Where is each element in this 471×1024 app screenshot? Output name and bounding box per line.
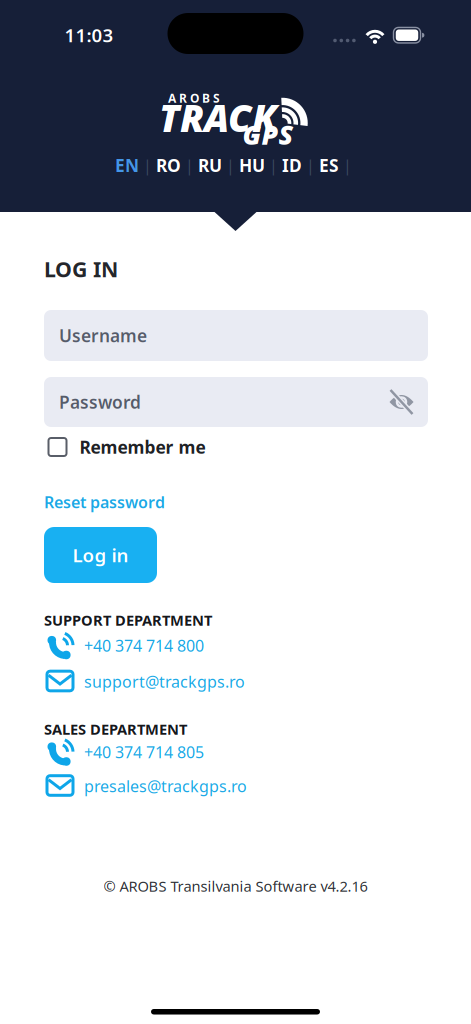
staticText: | — [343, 155, 352, 176]
staticText: ID — [282, 154, 302, 177]
staticText: | — [269, 155, 278, 176]
button[interactable]: HU — [239, 154, 265, 177]
button[interactable]: RO — [156, 154, 181, 177]
button[interactable]: Log in — [44, 527, 157, 583]
button[interactable]: +40 374 714 800 — [44, 627, 471, 663]
staticText: SUPPORT DEPARTMENT — [44, 610, 212, 630]
button[interactable]: support@trackgps.ro — [44, 663, 471, 699]
staticText: Reset password — [44, 491, 165, 513]
button[interactable]: RU — [198, 154, 222, 177]
staticText: Remember me — [79, 435, 205, 458]
staticText: | — [143, 155, 152, 176]
staticText: EN — [115, 154, 139, 177]
button[interactable]: ES — [319, 154, 339, 177]
staticText: TRACK — [159, 93, 277, 142]
staticText: HU — [239, 154, 265, 177]
staticText: LOG IN — [44, 255, 118, 283]
staticText: support@trackgps.ro — [84, 671, 245, 692]
button[interactable]: Reset password — [44, 491, 165, 513]
staticText: | — [185, 155, 194, 176]
staticText: SALES DEPARTMENT — [44, 719, 187, 739]
button[interactable]: Remember me — [44, 435, 205, 458]
staticText: Password — [59, 390, 141, 413]
staticText: ES — [319, 154, 339, 177]
staticText: presales@trackgps.ro — [84, 775, 247, 797]
button[interactable]: Password — [44, 377, 428, 427]
staticText: Username — [59, 324, 147, 347]
staticText: +40 374 714 800 — [84, 635, 204, 656]
staticText: © AROBS Transilvania Software v4.2.16 — [103, 876, 367, 896]
staticText: GPS — [242, 117, 293, 152]
button[interactable]: presales@trackgps.ro — [44, 768, 471, 804]
staticText: RU — [198, 154, 222, 177]
staticText: +40 374 714 805 — [84, 741, 204, 763]
staticText: Log in — [72, 543, 128, 567]
button[interactable]: Username — [44, 310, 428, 361]
button[interactable]: Show password — [388, 389, 414, 415]
button[interactable]: EN — [115, 154, 139, 177]
button[interactable]: +40 374 714 805 — [44, 736, 471, 768]
staticText: | — [226, 155, 235, 176]
button[interactable]: ID — [282, 154, 302, 177]
staticText: | — [306, 155, 315, 176]
staticText: RO — [156, 154, 181, 177]
staticText: 11:03 — [64, 23, 113, 47]
staticText: AROBS — [168, 90, 220, 106]
